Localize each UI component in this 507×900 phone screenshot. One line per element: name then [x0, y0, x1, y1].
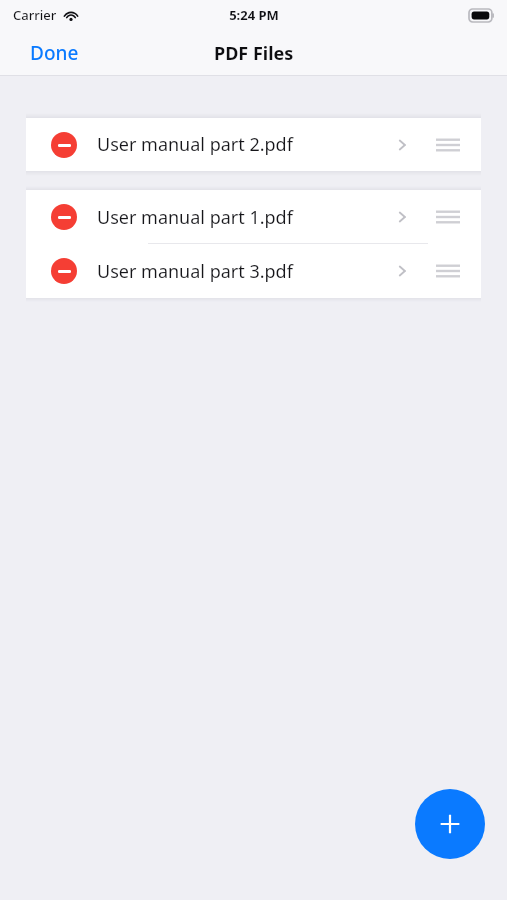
button[interactable]: Delete User manual part 2.pdf	[26, 118, 481, 171]
staticText: User manual part 3.pdf	[97, 259, 385, 284]
staticText: User manual part 2.pdf	[97, 132, 385, 157]
staticText: Done	[30, 40, 79, 66]
staticText: Carrier	[13, 6, 57, 24]
staticText: PDF Files	[214, 41, 294, 66]
button[interactable]: Open User manual part 2.pdf	[385, 118, 419, 171]
button[interactable]: Open User manual part 3.pdf	[385, 244, 419, 298]
button[interactable]: Delete User manual part 1.pdf	[51, 204, 77, 230]
button[interactable]: Delete User manual part 3.pdf	[26, 244, 481, 298]
button[interactable]: Delete User manual part 3.pdf	[51, 258, 77, 284]
button[interactable]: Delete User manual part 2.pdf	[51, 132, 77, 158]
staticText: 5:24 PM	[229, 6, 279, 24]
staticText: User manual part 1.pdf	[97, 205, 385, 230]
button[interactable]: Reorder User manual part 3.pdf	[425, 244, 471, 298]
button[interactable]: Done	[20, 34, 89, 72]
button[interactable]: Open User manual part 1.pdf	[385, 190, 419, 244]
button[interactable]: Delete User manual part 1.pdf	[26, 190, 481, 244]
button[interactable]: Reorder User manual part 1.pdf	[425, 190, 471, 244]
button[interactable]: Add file	[415, 789, 485, 859]
button[interactable]: Reorder User manual part 2.pdf	[425, 118, 471, 171]
